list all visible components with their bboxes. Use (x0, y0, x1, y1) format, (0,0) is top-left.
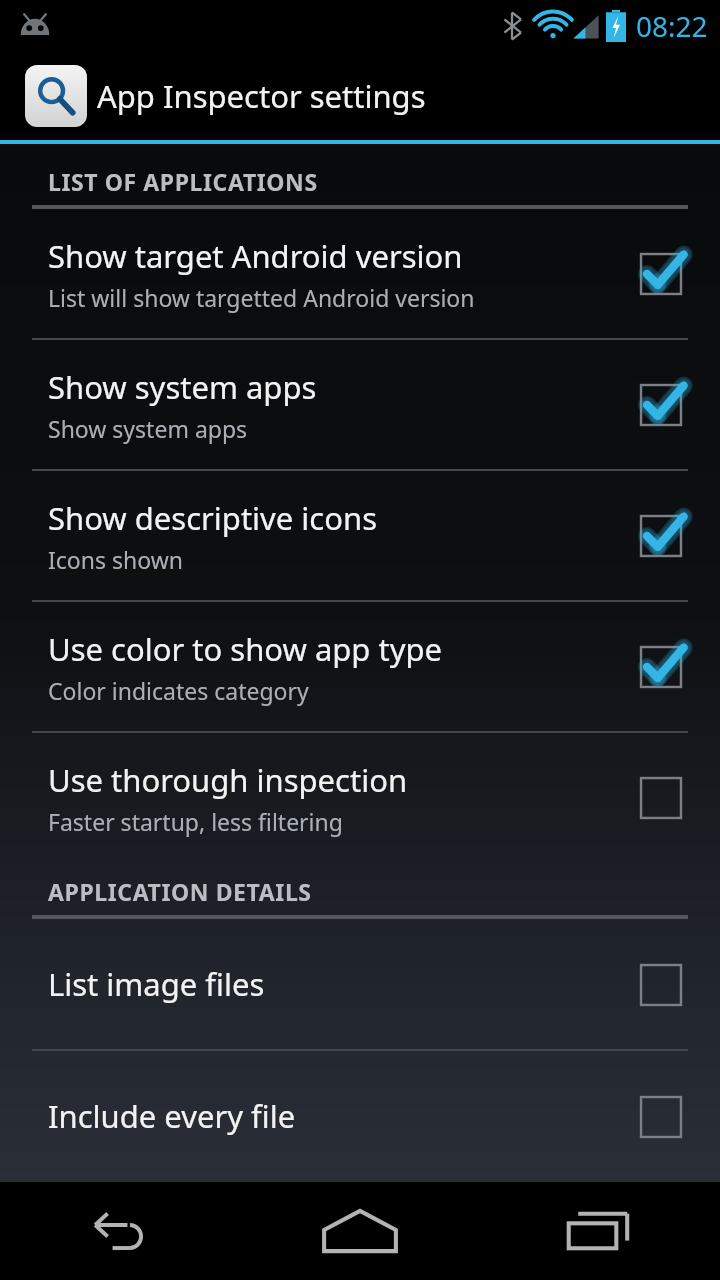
staticText: App Inspector settings (97, 75, 426, 117)
staticText: APPLICATION DETAILS (48, 876, 312, 907)
button[interactable]: Home (240, 1182, 480, 1280)
staticText: Include every file (48, 1095, 296, 1137)
button[interactable]: Unchecked (602, 733, 720, 862)
button[interactable]: List image files (0, 919, 720, 1049)
staticText: LIST OF APPLICATIONS (48, 166, 318, 197)
button[interactable]: Unchecked (602, 920, 720, 1049)
button[interactable]: Show descriptive icons (0, 471, 720, 600)
staticText: List will show targetted Android version (48, 282, 475, 313)
button[interactable]: Checked (602, 209, 720, 338)
button[interactable]: Checked (602, 340, 720, 469)
staticText: Show system apps (48, 413, 248, 444)
staticText: Faster startup, less filtering (48, 806, 343, 837)
button[interactable]: Use color to show app type (0, 602, 720, 731)
button[interactable]: Back (0, 1182, 240, 1280)
button[interactable]: Unchecked (602, 1052, 720, 1181)
button[interactable]: App Inspector settings (0, 52, 720, 140)
staticText: Show system apps (48, 366, 317, 408)
button[interactable]: Show target Android version (0, 209, 720, 338)
staticText: Show target Android version (48, 235, 463, 277)
staticText: Use color to show app type (48, 628, 443, 670)
staticText: 08:22 (636, 7, 708, 45)
button[interactable]: Show system apps (0, 340, 720, 469)
staticText: Icons shown (48, 544, 183, 575)
button[interactable]: Include every file (0, 1051, 720, 1181)
button[interactable]: Checked (602, 471, 720, 600)
button[interactable]: Checked (602, 602, 720, 731)
staticText: Use thorough inspection (48, 759, 408, 801)
staticText: Show descriptive icons (48, 497, 378, 539)
staticText: Color indicates category (48, 675, 309, 706)
staticText: List image files (48, 963, 265, 1005)
button[interactable]: Recent apps (480, 1182, 720, 1280)
button[interactable]: Use thorough inspection (0, 733, 720, 862)
